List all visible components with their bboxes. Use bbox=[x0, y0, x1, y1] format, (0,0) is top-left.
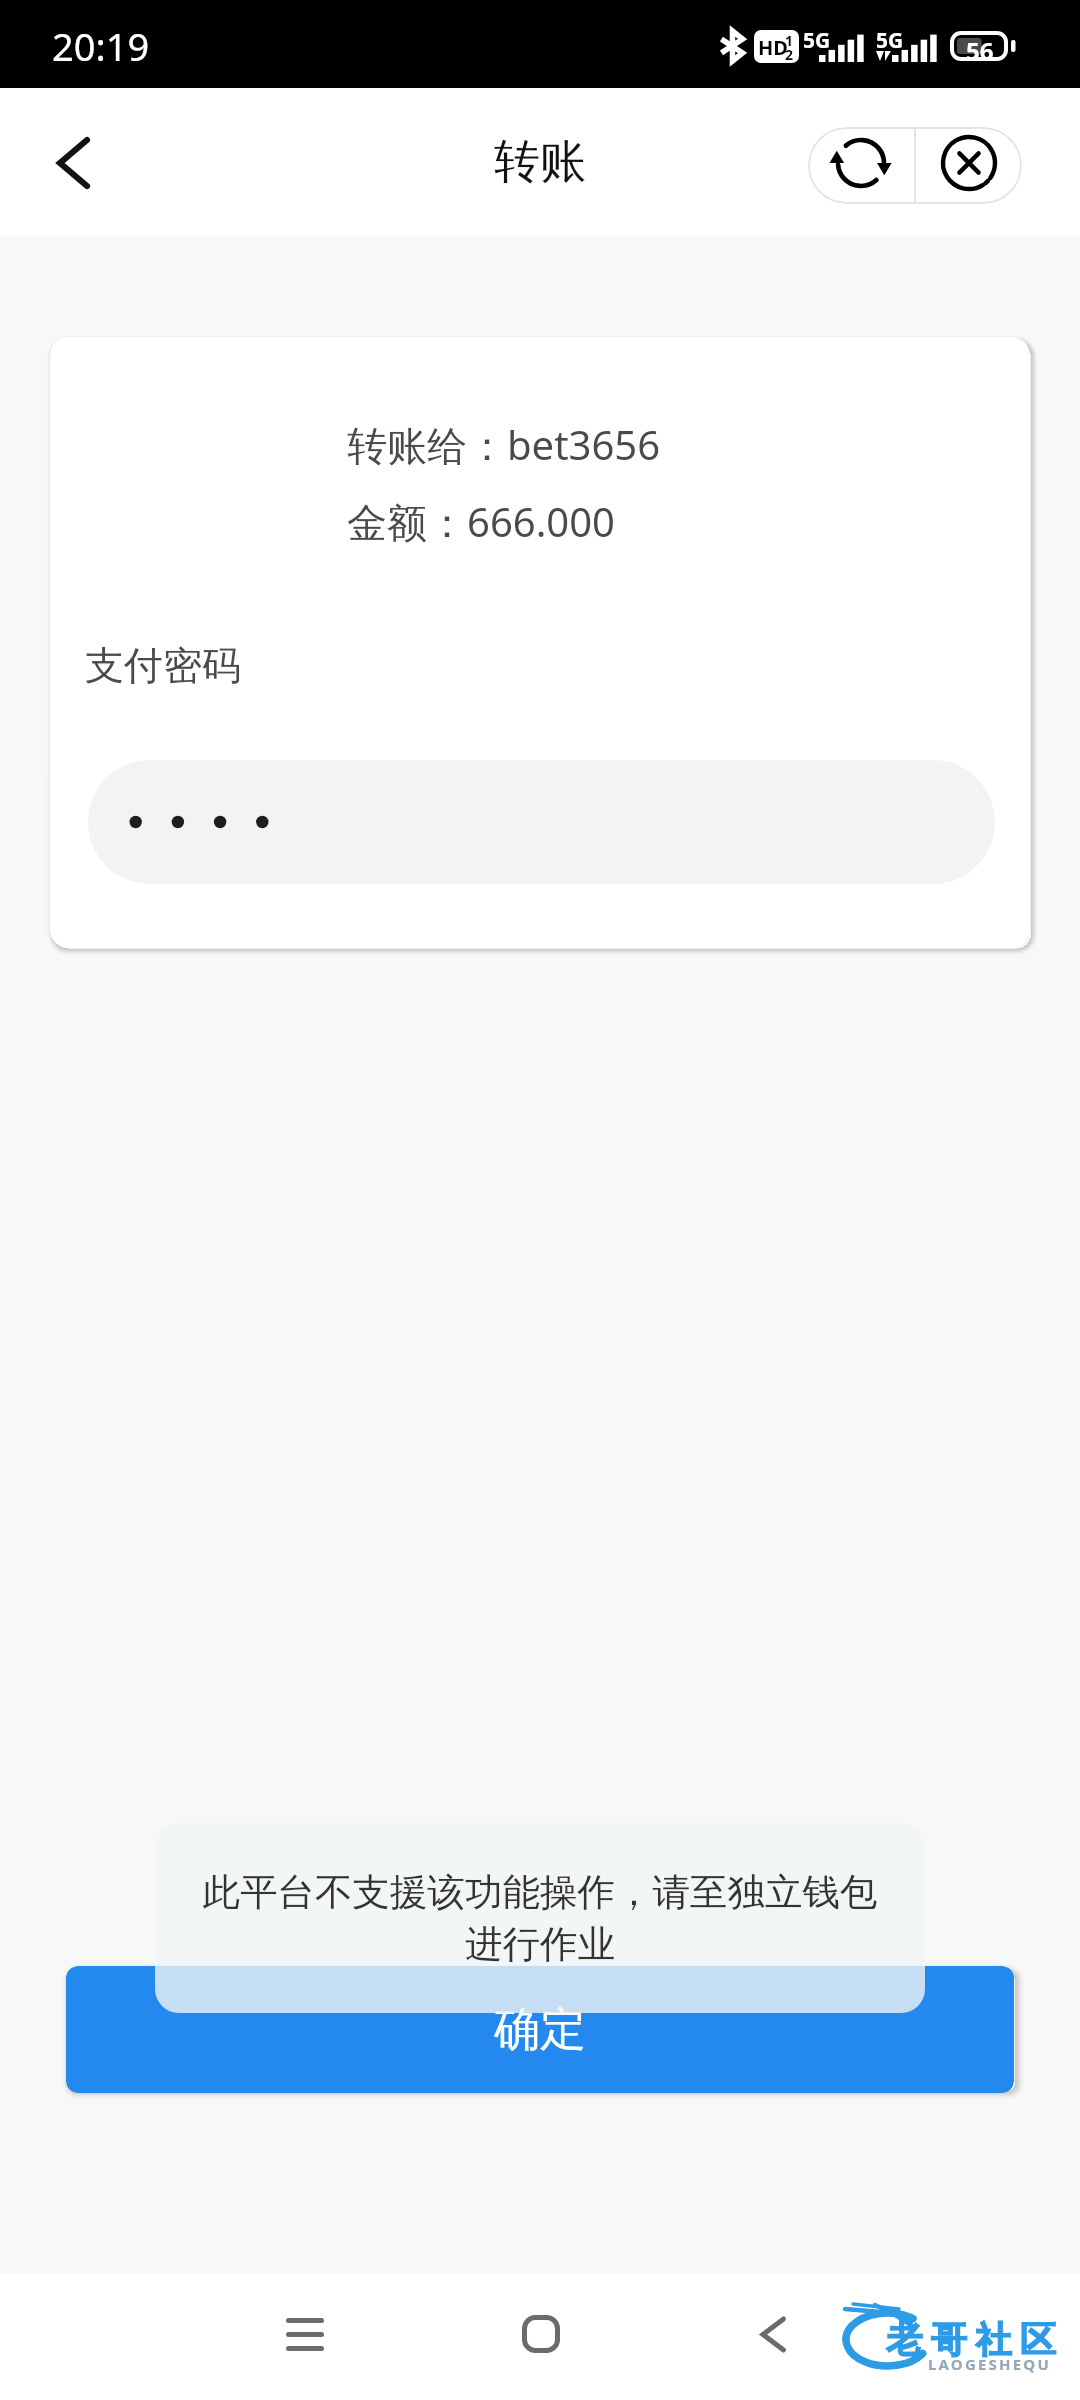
button[interactable]: Recent apps bbox=[250, 2274, 360, 2400]
staticText: 确定 bbox=[494, 2001, 586, 2059]
staticText: 转账 bbox=[494, 133, 586, 191]
staticText: LAOGESHEQU bbox=[928, 2354, 1051, 2374]
button[interactable]: Back bbox=[0, 88, 148, 231]
button[interactable] bbox=[88, 760, 995, 884]
staticText: 老哥社区 bbox=[882, 2317, 1060, 2362]
staticText: 2 bbox=[785, 45, 794, 63]
staticText: HD bbox=[758, 34, 788, 61]
button[interactable]: 确定 bbox=[66, 1966, 1014, 2093]
staticText: 5G bbox=[876, 26, 904, 55]
staticText: 5G bbox=[803, 26, 831, 55]
button[interactable]: Refresh bbox=[808, 127, 914, 204]
staticText: 20:19 bbox=[52, 20, 150, 72]
staticText: 转账给：bet3656 bbox=[347, 417, 661, 472]
button[interactable]: Home bbox=[486, 2274, 596, 2400]
staticText: 1 bbox=[785, 31, 794, 50]
staticText: 56 bbox=[966, 34, 994, 67]
staticText: 支付密码 bbox=[85, 641, 241, 690]
staticText: 此平台不支援该功能操作，请至独立钱包进行作业 bbox=[190, 1869, 890, 1968]
button[interactable]: Back bbox=[710, 2274, 820, 2400]
button[interactable]: Close bbox=[916, 127, 1022, 204]
staticText: 金额：666.000 bbox=[347, 494, 615, 549]
